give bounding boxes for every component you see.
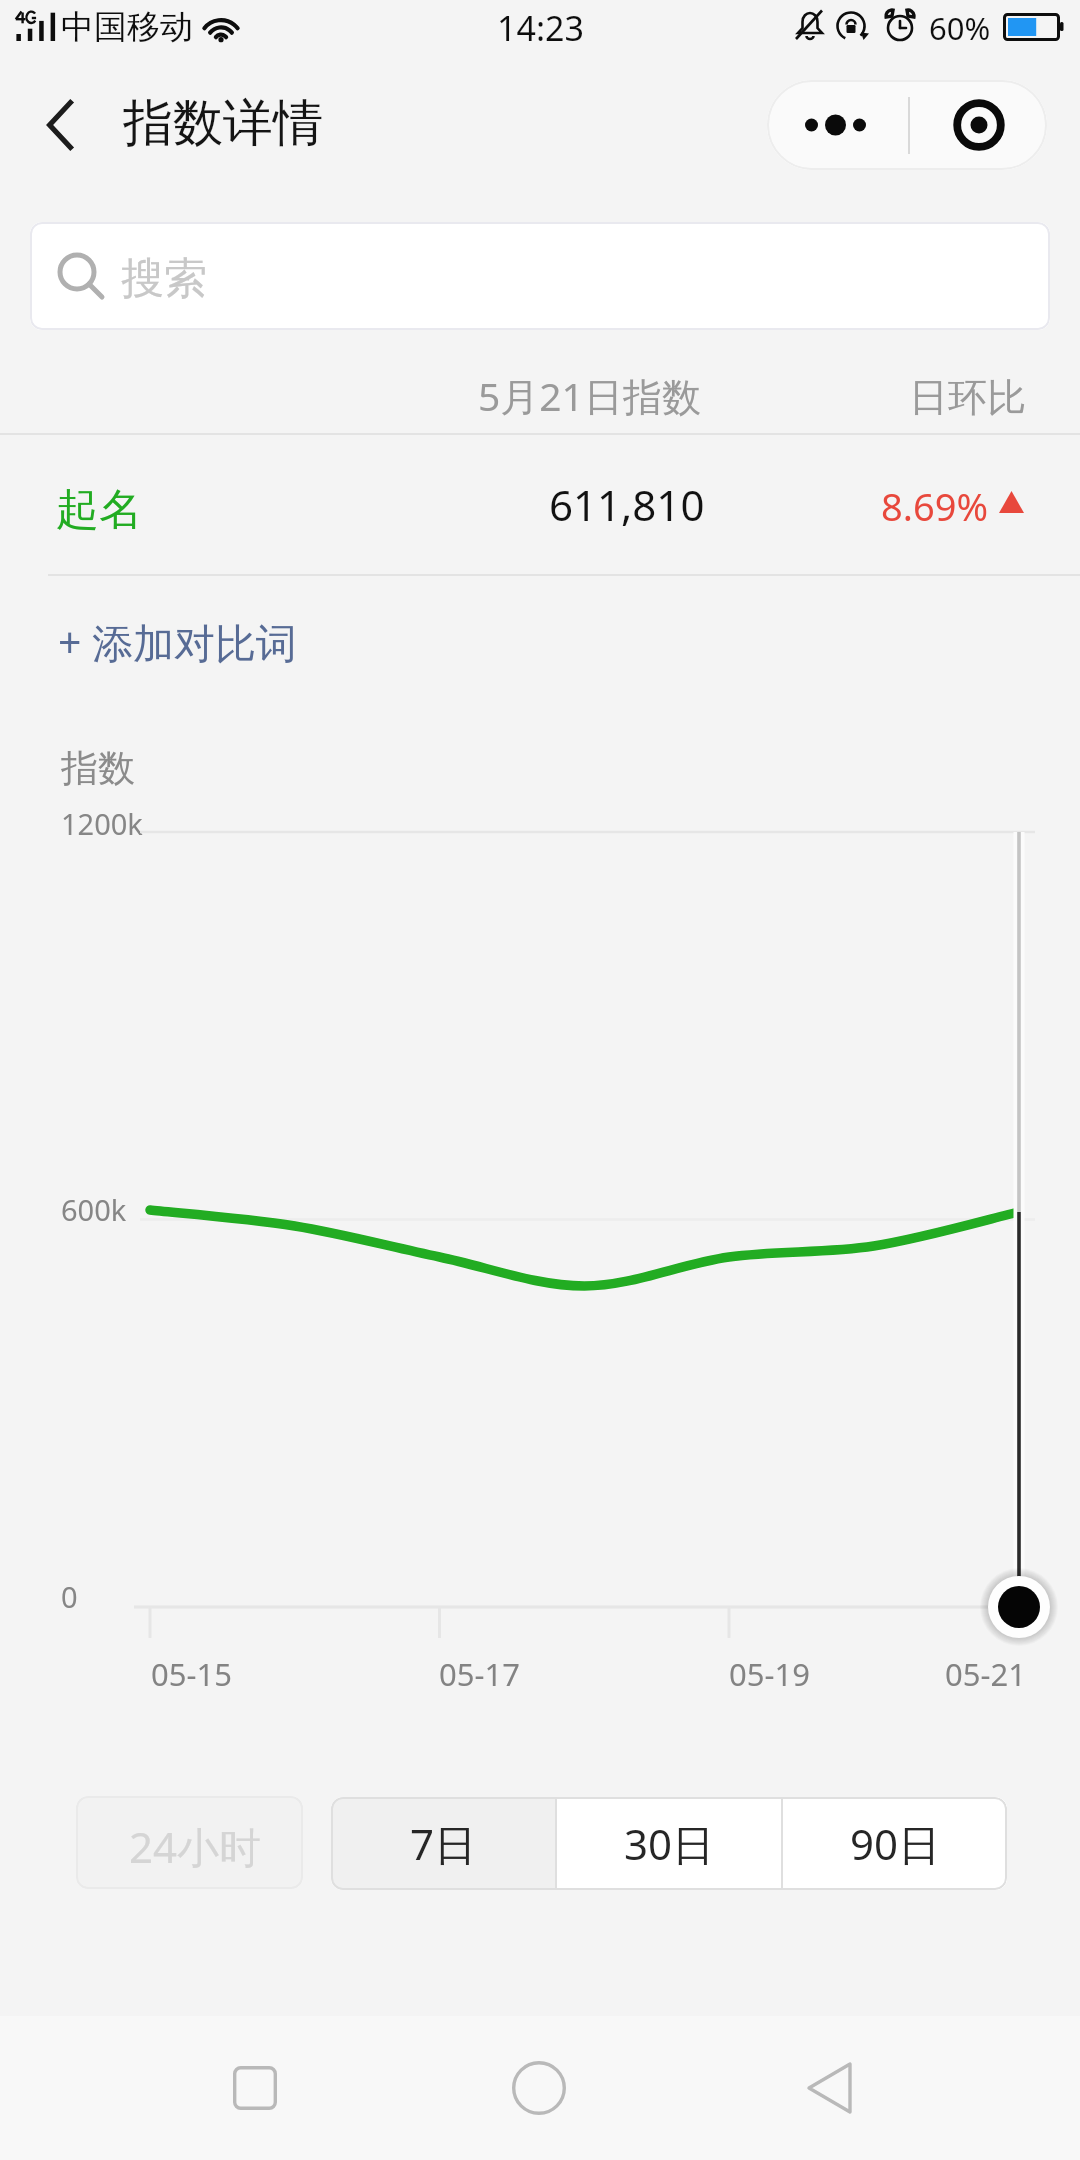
button[interactable]: More options <box>767 80 908 170</box>
button[interactable]: 搜索 <box>30 222 1050 330</box>
button[interactable]: Back <box>760 2018 900 2158</box>
staticText: 起名 <box>56 483 142 537</box>
button[interactable]: Close mini program <box>910 80 1047 170</box>
staticText: 中国移动 <box>61 6 193 48</box>
staticText: 05-15 <box>151 1653 232 1695</box>
staticText: 5月21日指数 <box>478 369 701 422</box>
button[interactable]: 30日 <box>557 1797 781 1890</box>
staticText: + 添加对比词 <box>58 614 298 670</box>
button[interactable]: Recent apps <box>185 2018 325 2158</box>
staticText: 90日 <box>850 1815 941 1872</box>
staticText: 日环比 <box>909 373 1026 422</box>
staticText: 600k <box>61 1190 127 1229</box>
staticText: 指数详情 <box>123 92 323 155</box>
staticText: 05-17 <box>439 1653 520 1695</box>
staticText: 05-21 <box>945 1653 1026 1695</box>
staticText: 8.69% <box>881 480 988 532</box>
button[interactable]: 90日 <box>783 1797 1007 1890</box>
staticText: 611,810 <box>549 476 705 533</box>
staticText: 0 <box>61 1577 78 1616</box>
staticText: 14:23 <box>497 5 584 51</box>
staticText: 搜索 <box>121 252 207 306</box>
button[interactable]: Home <box>469 2018 609 2158</box>
button[interactable]: 7日 <box>331 1797 555 1890</box>
button[interactable]: + 添加对比词 <box>30 598 326 686</box>
staticText: 24小时 <box>129 1818 262 1875</box>
staticText: 7日 <box>410 1815 477 1872</box>
staticText: 指数 <box>61 745 135 792</box>
staticText: 60% <box>929 7 991 49</box>
button[interactable]: 起名 <box>0 435 1080 574</box>
button[interactable]: Back <box>25 90 95 160</box>
staticText: 1200k <box>61 804 143 843</box>
staticText: 05-19 <box>729 1653 810 1695</box>
button[interactable]: 24小时 <box>76 1796 303 1889</box>
staticText: 30日 <box>624 1815 715 1872</box>
